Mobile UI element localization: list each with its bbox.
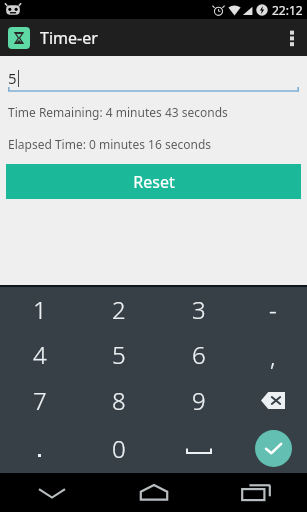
staticText: , [270, 340, 276, 373]
button[interactable]: Comma [239, 332, 307, 377]
button[interactable]: 3 [159, 287, 239, 332]
button[interactable]: Backspace [239, 377, 307, 424]
staticText: 5 [112, 338, 126, 371]
staticText: 7 [33, 384, 47, 417]
staticText: Time-er [40, 27, 98, 49]
button[interactable]: More options [277, 19, 307, 56]
staticText: 22:12 [272, 2, 303, 18]
staticText: 6 [192, 338, 206, 371]
staticText: Reset [133, 171, 175, 193]
button[interactable]: 6 [159, 332, 239, 377]
button[interactable]: 5 [8, 64, 299, 92]
button[interactable]: 4 [0, 332, 79, 377]
staticText: 0 [112, 432, 126, 465]
staticText: 8 [112, 384, 126, 417]
button[interactable] [0, 424, 79, 473]
button[interactable]: 1 [0, 287, 79, 332]
button[interactable]: 5 [79, 332, 159, 377]
button[interactable]: 0 [79, 424, 159, 473]
button[interactable]: Back [0, 473, 103, 512]
button[interactable]: 2 [79, 287, 159, 332]
staticText: 1 [33, 293, 47, 326]
button[interactable]: Enter [239, 424, 307, 473]
staticText: Time Remaining: 4 minutes 43 seconds [8, 104, 228, 120]
button[interactable]: 9 [159, 377, 239, 424]
button[interactable]: 8 [79, 377, 159, 424]
button[interactable]: Space [159, 424, 239, 473]
button[interactable]: Reset [6, 164, 301, 199]
button[interactable]: Minus [239, 287, 307, 332]
staticText: 9 [192, 384, 206, 417]
staticText: - [269, 293, 277, 326]
staticText: 2 [112, 293, 126, 326]
button[interactable]: Recent apps [205, 473, 307, 512]
button[interactable]: Home [103, 473, 205, 512]
staticText: Elapsed Time: 0 minutes 16 seconds [8, 136, 212, 152]
staticText: 4 [33, 338, 47, 371]
staticText: 3 [192, 293, 206, 326]
button[interactable]: 7 [0, 377, 79, 424]
staticText: 5 [8, 68, 17, 88]
